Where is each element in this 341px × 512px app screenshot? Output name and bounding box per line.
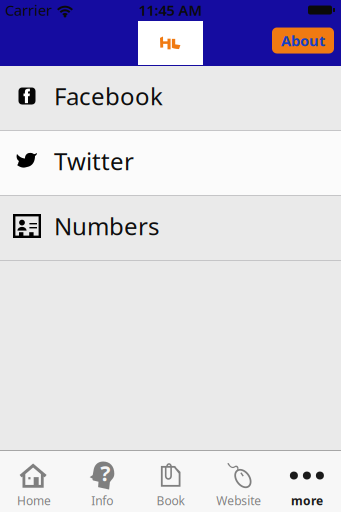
staticText: Home xyxy=(17,492,51,508)
button[interactable]: Twitter xyxy=(0,131,341,196)
button[interactable]: Book xyxy=(136,451,205,512)
staticText: Facebook xyxy=(54,80,163,112)
staticText: Carrier xyxy=(5,0,52,20)
staticText: Website xyxy=(216,492,261,508)
button[interactable]: Home xyxy=(0,451,68,512)
staticText: Info xyxy=(91,492,113,508)
staticText: About xyxy=(281,31,325,50)
button[interactable]: ? xyxy=(68,451,136,512)
staticText: Book xyxy=(156,492,184,508)
button[interactable]: About xyxy=(272,27,334,53)
button[interactable]: Numbers xyxy=(0,196,341,261)
staticText: ? xyxy=(100,459,110,487)
staticText: Twitter xyxy=(54,145,134,177)
button[interactable]: Website xyxy=(205,451,273,512)
staticText: 11:45 AM xyxy=(138,0,202,20)
button[interactable]: more xyxy=(273,451,341,512)
staticText: Numbers xyxy=(54,210,159,242)
staticText: more xyxy=(291,492,323,508)
button[interactable]: Facebook xyxy=(0,66,341,131)
